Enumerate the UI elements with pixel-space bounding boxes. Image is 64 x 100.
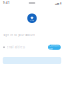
staticText: Sign in to your account — [3, 33, 35, 37]
button[interactable]: Continue — [48, 45, 61, 50]
staticText: Continue — [49, 44, 60, 51]
staticText: 9:41 — [3, 1, 10, 5]
staticText: email address — [7, 45, 25, 49]
staticText: acme — [30, 20, 34, 21]
staticText: ▂▄ ▮ — [55, 1, 61, 4]
